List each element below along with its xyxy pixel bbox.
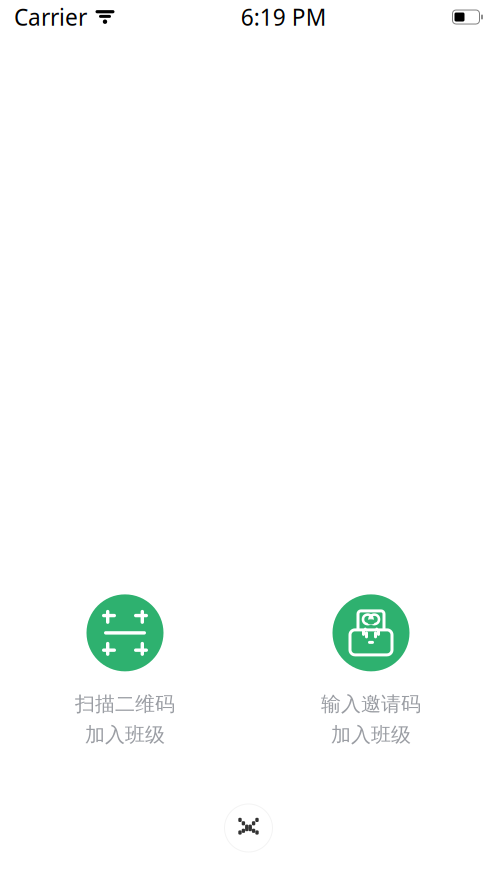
staticText: 6:19 PM (241, 2, 327, 32)
staticText: 加入班级 (331, 722, 411, 747)
staticText: Carrier (14, 2, 87, 32)
staticText: 输入邀请码 (321, 692, 421, 716)
staticText: 加入班级 (85, 722, 165, 747)
button[interactable]: Close (219, 799, 277, 857)
button[interactable]: 扫描二维码 (68, 587, 182, 747)
staticText: 扫描二维码 (75, 692, 175, 716)
button[interactable]: 输入邀请码 (314, 587, 428, 747)
